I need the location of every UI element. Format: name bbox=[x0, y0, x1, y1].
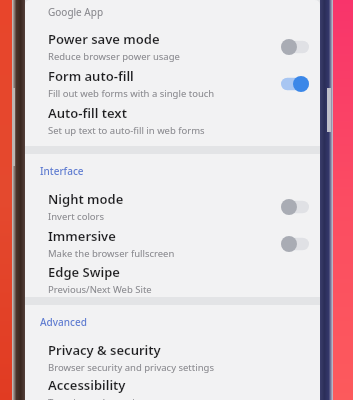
staticText: Previous/Next Web Site bbox=[48, 283, 152, 296]
staticText: Browser security and privacy settings bbox=[48, 361, 214, 374]
staticText: Auto-fill text bbox=[48, 104, 127, 122]
staticText: Immersive bbox=[48, 227, 116, 245]
staticText: Interface bbox=[40, 164, 84, 178]
staticText: Form auto-fill bbox=[48, 67, 134, 85]
button[interactable]: Accessibility bbox=[25, 376, 320, 400]
button[interactable]: Privacy & security bbox=[25, 339, 320, 376]
button[interactable]: Power save mode bbox=[25, 28, 320, 65]
staticText: Google App bbox=[48, 5, 104, 19]
button[interactable]: Toggle Immersive bbox=[280, 233, 310, 255]
staticText: Privacy & security bbox=[48, 341, 161, 359]
button[interactable]: Toggle Night mode bbox=[280, 196, 310, 218]
staticText: Make the browser fullscreen bbox=[48, 247, 175, 260]
button[interactable]: Immersive bbox=[25, 225, 320, 262]
staticText: Reduce browser power usage bbox=[48, 50, 180, 63]
staticText: Text size and zooming bbox=[48, 396, 147, 400]
button[interactable]: Toggle Form auto-fill bbox=[280, 73, 310, 95]
staticText: Accessibility bbox=[48, 376, 126, 394]
button[interactable]: Auto-fill text bbox=[25, 102, 320, 139]
staticText: Set up text to auto-fill in web forms bbox=[48, 124, 205, 137]
staticText: Fill out web forms with a single touch bbox=[48, 87, 215, 100]
button[interactable]: Form auto-fill bbox=[25, 65, 320, 102]
button[interactable]: Night mode bbox=[25, 188, 320, 225]
staticText: Advanced bbox=[40, 315, 87, 329]
staticText: Night mode bbox=[48, 190, 124, 208]
button[interactable]: Edge Swipe bbox=[25, 262, 320, 297]
staticText: Edge Swipe bbox=[48, 263, 120, 281]
staticText: Power save mode bbox=[48, 30, 160, 48]
button[interactable]: Toggle Power save mode bbox=[280, 36, 310, 58]
staticText: Invert colors bbox=[48, 210, 105, 223]
